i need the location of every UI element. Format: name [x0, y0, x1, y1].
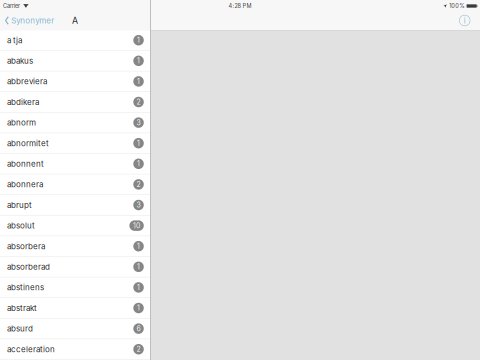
staticText: 1	[137, 77, 140, 86]
staticText: 1	[137, 263, 140, 271]
staticText: abnorm	[7, 118, 36, 127]
button[interactable]: abbreviera	[0, 71, 150, 92]
button[interactable]: abstrakt	[0, 298, 150, 319]
staticText: 1	[137, 304, 140, 312]
button[interactable]: absorbera	[0, 236, 150, 257]
staticText: 100%	[449, 3, 464, 9]
staticText: 1	[137, 139, 140, 147]
staticText: abonnera	[7, 180, 43, 189]
button[interactable]: acceleration	[0, 339, 150, 360]
staticText: 2	[137, 345, 141, 353]
staticText: 4:28 PM	[228, 3, 251, 9]
button[interactable]: abdikera	[0, 92, 150, 113]
staticText: abrupt	[7, 200, 32, 210]
staticText: 6	[137, 324, 141, 333]
button[interactable]: abnorm	[0, 113, 150, 133]
button[interactable]: abonnera	[0, 174, 150, 195]
staticText: acceleration	[7, 344, 55, 354]
staticText: a tja	[7, 35, 22, 45]
staticText: absorberad	[7, 262, 50, 272]
staticText: abakus	[7, 56, 33, 66]
staticText: A	[72, 15, 78, 26]
staticText: 1	[137, 242, 140, 250]
button[interactable]: absurd	[0, 319, 150, 339]
button[interactable]: abstinens	[0, 277, 150, 298]
staticText: 3	[137, 118, 141, 127]
staticText: Synonymer	[11, 16, 54, 25]
staticText: abnormitet	[7, 138, 49, 148]
staticText: 2	[137, 180, 141, 189]
staticText: i	[464, 16, 466, 25]
staticText: 3	[137, 201, 141, 209]
staticText: abonnent	[7, 159, 44, 169]
staticText: absorbera	[7, 241, 45, 251]
staticText: abdikera	[7, 97, 39, 107]
staticText: absolut	[7, 221, 35, 230]
button[interactable]: absorberad	[0, 257, 150, 277]
staticText: abstrakt	[7, 303, 37, 313]
staticText: 1	[137, 160, 140, 168]
button[interactable]: Synonymer	[0, 11, 58, 30]
button[interactable]: absolut	[0, 216, 150, 236]
button[interactable]: abakus	[0, 51, 150, 71]
staticText: 2	[137, 98, 141, 106]
staticText: abbreviera	[7, 77, 47, 86]
button[interactable]: Info	[458, 11, 480, 30]
staticText: 1	[137, 283, 140, 292]
staticText: 10	[133, 221, 140, 230]
button[interactable]: abnormitet	[0, 133, 150, 154]
staticText: absurd	[7, 324, 33, 333]
staticText: 1	[137, 57, 140, 65]
button[interactable]: abonnent	[0, 154, 150, 174]
staticText: abstinens	[7, 283, 44, 292]
button[interactable]: a tja	[0, 30, 150, 51]
staticText: Carrier	[3, 3, 20, 9]
staticText: 1	[137, 36, 140, 44]
button[interactable]: abrupt	[0, 195, 150, 216]
